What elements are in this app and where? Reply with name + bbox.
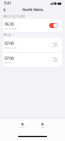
staticText: 07:00 <box>4 41 13 46</box>
staticText: Morning health <box>3 15 25 18</box>
button[interactable]: Sleep <box>32 119 52 132</box>
staticText: 06:30 <box>4 21 13 27</box>
staticText: Sleep <box>3 33 11 36</box>
staticText: Health Habits <box>22 8 42 12</box>
staticText: Alarms <box>20 126 25 128</box>
staticText: Weekend <box>4 62 11 64</box>
button[interactable]: Alarms <box>12 119 32 132</box>
staticText: 9:41 <box>4 2 11 5</box>
staticText: Sleep <box>40 126 44 128</box>
button[interactable]: 06:30 <box>3 19 62 32</box>
staticText: Weekdays · Walking <box>4 47 17 49</box>
button[interactable]: 07:00 <box>3 37 62 52</box>
button[interactable]: 07:00 <box>3 52 62 67</box>
button[interactable]: Back <box>1 7 7 13</box>
staticText: Weekdays · Vitamins <box>4 28 17 30</box>
staticText: 07:00 <box>4 55 13 61</box>
